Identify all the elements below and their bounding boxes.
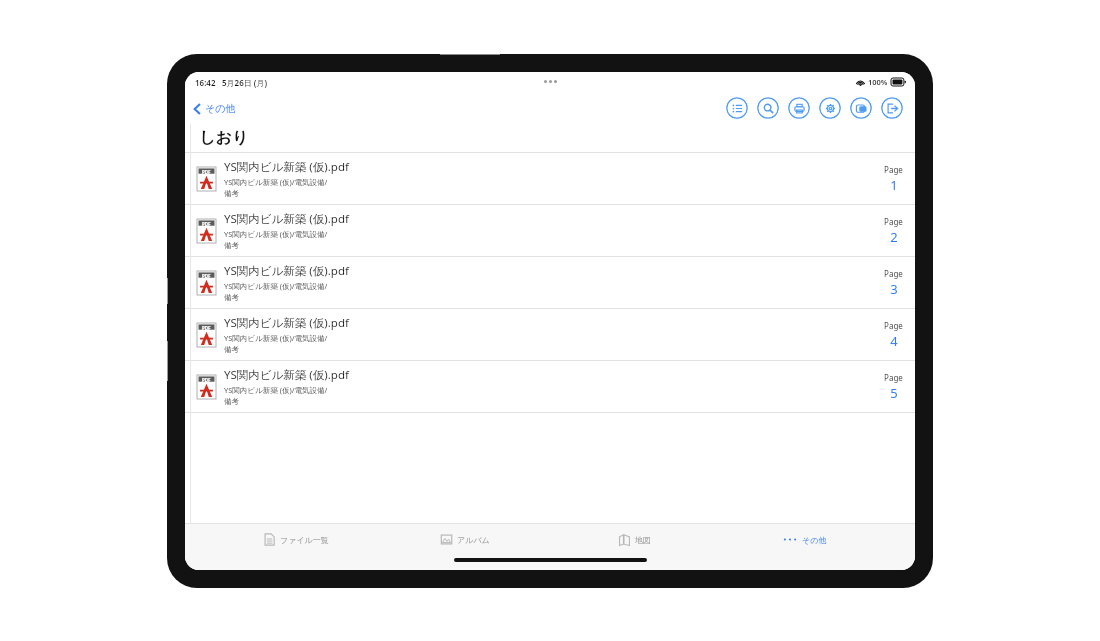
staticText: Page xyxy=(884,268,903,279)
staticText: 備考 xyxy=(224,241,239,250)
staticText: YS関内ビル新築 (仮).pdf xyxy=(224,159,349,175)
button[interactable]: PDF xyxy=(185,153,915,204)
staticText: 5 xyxy=(890,384,898,402)
button[interactable]: Export xyxy=(881,97,903,119)
staticText: PDF xyxy=(202,273,211,279)
staticText: 備考 xyxy=(224,345,239,354)
staticText: 16:42 xyxy=(195,77,216,88)
staticText: 備考 xyxy=(224,189,239,198)
button[interactable]: Window xyxy=(850,97,872,119)
button[interactable]: その他 xyxy=(191,99,239,118)
staticText: 3 xyxy=(890,280,898,298)
staticText: ファイル一覧 xyxy=(280,535,329,545)
button[interactable]: Settings xyxy=(819,97,841,119)
staticText: PDF xyxy=(202,221,211,227)
staticText: 4 xyxy=(890,332,898,350)
staticText: 5月26日 (月) xyxy=(222,77,267,88)
staticText: YS関内ビル新築 (仮).pdf xyxy=(224,367,349,383)
staticText: 備考 xyxy=(224,293,239,302)
button[interactable]: 地図 xyxy=(613,530,656,549)
button[interactable]: PDF xyxy=(185,205,915,256)
staticText: PDF xyxy=(202,325,211,331)
staticText: 2 xyxy=(890,228,898,246)
staticText: Page xyxy=(884,372,903,383)
staticText: YS関内ビル新築 (仮)/電気設備/ xyxy=(224,281,328,291)
staticText: YS関内ビル新築 (仮)/電気設備/ xyxy=(224,229,328,239)
staticText: その他 xyxy=(205,102,236,115)
staticText: YS関内ビル新築 (仮).pdf xyxy=(224,315,349,331)
button[interactable]: PDF xyxy=(185,257,915,308)
button[interactable]: PDF xyxy=(185,309,915,360)
staticText: その他 xyxy=(802,535,827,545)
staticText: Page xyxy=(884,320,903,331)
button[interactable]: ファイル一覧 xyxy=(258,530,334,549)
staticText: YS関内ビル新築 (仮).pdf xyxy=(224,211,349,227)
staticText: Page xyxy=(884,216,903,227)
staticText: PDF xyxy=(202,169,211,175)
button[interactable]: Search xyxy=(757,97,779,119)
staticText: YS関内ビル新築 (仮).pdf xyxy=(224,263,349,279)
staticText: YS関内ビル新築 (仮)/電気設備/ xyxy=(224,177,328,187)
button[interactable]: List xyxy=(726,97,748,119)
staticText: 100% xyxy=(868,77,888,87)
staticText: 備考 xyxy=(224,397,239,406)
button[interactable]: アルバム xyxy=(435,530,495,549)
staticText: YS関内ビル新築 (仮)/電気設備/ xyxy=(224,385,328,395)
staticText: 1 xyxy=(890,176,898,194)
staticText: YS関内ビル新築 (仮)/電気設備/ xyxy=(224,333,328,343)
staticText: アルバム xyxy=(457,535,490,545)
staticText: しおり xyxy=(199,128,249,148)
button[interactable]: PDF xyxy=(185,361,915,412)
staticText: PDF xyxy=(202,377,211,383)
button[interactable]: その他 xyxy=(777,530,832,549)
button[interactable]: Print xyxy=(788,97,810,119)
staticText: 地図 xyxy=(635,535,651,545)
staticText: Page xyxy=(884,164,903,175)
